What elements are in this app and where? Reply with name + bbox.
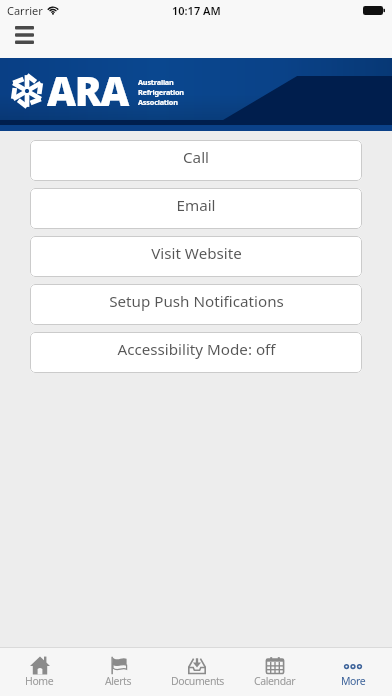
button[interactable]: Calendar xyxy=(236,648,314,696)
staticText: 10:17 AM xyxy=(172,3,221,18)
staticText: Accessibility Mode: off xyxy=(117,339,276,360)
staticText: Calendar xyxy=(254,674,296,688)
staticText: Home xyxy=(25,674,54,688)
staticText: Carrier xyxy=(7,3,43,18)
staticText: Setup Push Notifications xyxy=(109,291,284,312)
button[interactable]: More xyxy=(314,648,392,696)
button[interactable]: Home xyxy=(0,648,79,696)
button[interactable]: Visit Website xyxy=(30,236,362,277)
staticText: Email xyxy=(176,195,216,216)
staticText: ARA xyxy=(47,63,128,117)
staticText: More xyxy=(341,674,366,688)
staticText: Documents xyxy=(171,674,224,688)
button[interactable]: Call xyxy=(30,140,362,181)
button[interactable]: Accessibility Mode: off xyxy=(30,332,362,373)
button[interactable]: Setup Push Notifications xyxy=(30,284,362,325)
button[interactable]: Alerts xyxy=(79,648,158,696)
button[interactable]: Email xyxy=(30,188,362,229)
staticText: Association xyxy=(138,97,178,107)
staticText: Visit Website xyxy=(151,243,242,264)
staticText: Refrigeration xyxy=(138,87,184,97)
staticText: Alerts xyxy=(105,674,132,688)
staticText: Call xyxy=(183,147,209,168)
staticText: Australian xyxy=(138,77,174,87)
button[interactable]: Menu xyxy=(6,22,42,56)
button[interactable]: Documents xyxy=(158,648,236,696)
